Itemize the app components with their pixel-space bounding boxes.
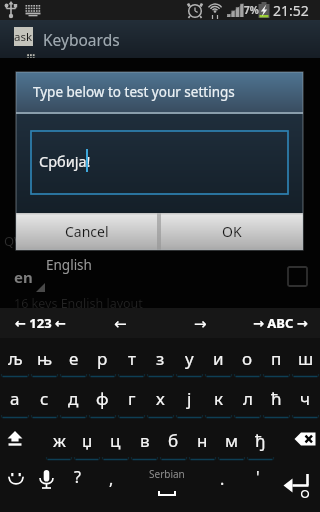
staticText: , [109, 468, 114, 490]
staticText: д [68, 387, 79, 410]
button[interactable]: т [117, 338, 146, 378]
button[interactable]: Space [129, 461, 205, 512]
staticText: у [185, 347, 194, 370]
staticText: х [156, 387, 165, 410]
button[interactable]: Voice input [32, 461, 61, 512]
staticText: а [10, 387, 20, 410]
staticText: с [40, 387, 49, 410]
button[interactable]: ш [291, 338, 320, 378]
staticText: ђ [255, 429, 266, 452]
button[interactable]: Emoji [0, 461, 32, 512]
staticText: л [243, 387, 253, 410]
staticText: 16 keys English layout [14, 295, 143, 312]
staticText: QWERTY [4, 232, 57, 250]
staticText: н [197, 429, 208, 452]
staticText: Serbian [149, 467, 185, 481]
button[interactable]: б [159, 419, 188, 461]
staticText: и [213, 347, 224, 370]
staticText: ж [53, 429, 66, 452]
button[interactable]: у [175, 338, 204, 378]
button[interactable]: о [233, 338, 262, 378]
staticText: џ [82, 429, 93, 452]
staticText: ш [298, 347, 314, 370]
staticText: ask [14, 29, 33, 45]
staticText: е [69, 347, 79, 370]
button[interactable]: н [188, 419, 217, 461]
staticText: ← [114, 315, 127, 332]
staticText: OK [222, 222, 242, 241]
button[interactable]: е [59, 338, 88, 378]
button[interactable]: љ [0, 338, 30, 378]
button[interactable]: Cancel [16, 213, 157, 250]
staticText: з [156, 347, 165, 370]
staticText: б [168, 429, 179, 452]
button[interactable]: ц [101, 419, 130, 461]
staticText: в [140, 429, 150, 452]
staticText: ц [110, 429, 121, 452]
button[interactable]: ? [61, 461, 94, 512]
button[interactable]: њ [30, 338, 59, 378]
staticText: en [14, 267, 33, 287]
button[interactable]: , [94, 461, 129, 512]
staticText: м [225, 429, 239, 452]
button[interactable]: р [88, 338, 117, 378]
button[interactable]: Enter [275, 461, 320, 512]
staticText: г [128, 387, 136, 410]
button[interactable]: а [0, 378, 30, 419]
button[interactable]: ђ [246, 419, 275, 461]
button[interactable]: з [146, 338, 175, 378]
staticText: ј [187, 387, 192, 410]
button[interactable]: с [30, 378, 59, 419]
button[interactable]: . [205, 461, 240, 512]
button[interactable]: Shift [0, 419, 45, 461]
staticText: ' [256, 466, 260, 488]
staticText: 21:52 [273, 1, 309, 20]
button[interactable]: м [217, 419, 246, 461]
button[interactable]: Move left [80, 308, 160, 338]
button[interactable]: ч [291, 378, 320, 419]
staticText: о [242, 347, 253, 370]
button[interactable]: к [204, 378, 233, 419]
staticText: к [214, 387, 224, 410]
staticText: 7% [244, 3, 259, 17]
button[interactable]: ← 123 ← [0, 308, 80, 338]
staticText: њ [37, 347, 53, 370]
button[interactable]: п [262, 338, 291, 378]
staticText: р [97, 347, 108, 370]
button[interactable]: и [204, 338, 233, 378]
staticText: Србија! [39, 151, 91, 171]
button[interactable]: л [233, 378, 262, 419]
button[interactable]: в [130, 419, 159, 461]
staticText: . [220, 468, 225, 490]
staticText: ф [96, 387, 109, 410]
staticText: Type below to test your settings [33, 83, 235, 101]
staticText: т [128, 347, 136, 370]
staticText: Cancel [65, 222, 109, 241]
button[interactable]: х [146, 378, 175, 419]
staticText: ћ [271, 387, 282, 410]
staticText: → [194, 315, 207, 332]
staticText: Keyboards [43, 29, 120, 50]
button[interactable]: Move right [160, 308, 240, 338]
button[interactable]: → ABC → [240, 308, 320, 338]
button[interactable]: ' [240, 461, 275, 512]
button[interactable]: ћ [262, 378, 291, 419]
button[interactable]: г [117, 378, 146, 419]
button[interactable]: ј [175, 378, 204, 419]
button[interactable]: OK [161, 213, 303, 250]
staticText: ← 123 ← [15, 314, 66, 332]
staticText: ? [74, 466, 81, 488]
button[interactable]: Backspace [275, 419, 320, 461]
button[interactable]: ж [45, 419, 73, 461]
button[interactable]: д [59, 378, 88, 419]
staticText: љ [8, 347, 23, 370]
staticText: п [271, 347, 282, 370]
button[interactable]: ф [88, 378, 117, 419]
staticText: English [46, 256, 92, 274]
button[interactable]: џ [73, 419, 101, 461]
staticText: → ABC → [253, 314, 308, 332]
staticText: ч [300, 387, 311, 410]
